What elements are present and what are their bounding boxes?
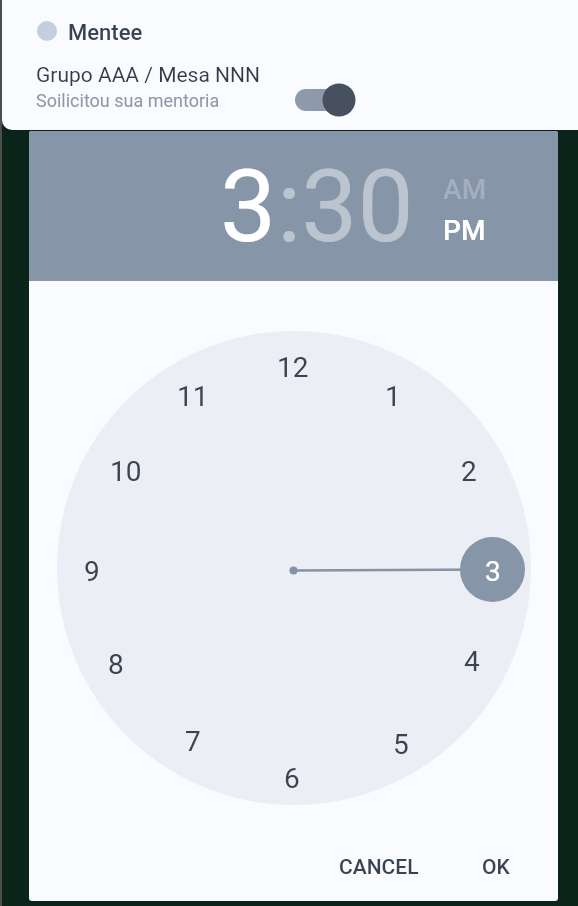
button[interactable]: Mentee: [2, 0, 578, 130]
button[interactable]: AM: [443, 173, 487, 206]
staticText: 6: [284, 762, 300, 795]
staticText: OK: [482, 855, 510, 880]
button[interactable]: 4: [447, 636, 497, 686]
staticText: 1: [385, 380, 401, 413]
button[interactable]: 11: [168, 371, 218, 421]
button[interactable]: 3: [220, 148, 277, 265]
button[interactable]: [295, 89, 341, 111]
staticText: 10: [110, 455, 142, 488]
staticText: 2: [461, 455, 477, 488]
button[interactable]: 7: [168, 716, 218, 766]
button[interactable]: 2: [444, 446, 494, 496]
button[interactable]: 12: [268, 342, 318, 392]
button[interactable]: 5: [376, 719, 426, 769]
button[interactable]: 9: [67, 546, 117, 596]
staticText: Mentee: [68, 20, 143, 46]
staticText: Grupo AAA / Mesa NNN: [36, 63, 261, 88]
staticText: Soilicitou sua mentoria: [36, 90, 220, 111]
staticText: 11: [177, 380, 209, 413]
button[interactable]: OK: [466, 845, 526, 889]
button[interactable]: 6: [267, 753, 317, 803]
staticText: 9: [84, 555, 100, 588]
button[interactable]: 3: [468, 546, 518, 596]
staticText: 12: [277, 351, 309, 384]
staticText: 7: [185, 725, 201, 758]
staticText: 4: [464, 645, 480, 678]
button[interactable]: 8: [91, 639, 141, 689]
staticText: 8: [108, 648, 124, 681]
button[interactable]: :30: [277, 148, 414, 265]
button[interactable]: 1: [368, 371, 418, 421]
staticText: 3: [485, 555, 501, 588]
staticText: 5: [393, 728, 409, 761]
button[interactable]: PM: [443, 214, 486, 247]
staticText: CANCEL: [339, 855, 419, 880]
button[interactable]: 10: [101, 446, 151, 496]
button[interactable]: CANCEL: [321, 845, 437, 889]
